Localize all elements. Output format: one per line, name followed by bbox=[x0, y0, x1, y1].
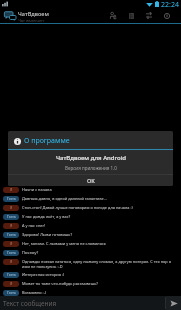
button[interactable]: Я bbox=[0, 238, 181, 247]
button[interactable]: Гость bbox=[0, 229, 181, 238]
staticText: Я bbox=[10, 260, 13, 264]
staticText: OK bbox=[87, 177, 95, 184]
button[interactable]: Я bbox=[0, 220, 181, 229]
staticText: Стоп-стоп! Давай лучше поговорим о погод… bbox=[22, 205, 133, 210]
button[interactable]: Гость bbox=[0, 287, 181, 296]
staticText: Возможно :-) bbox=[22, 290, 47, 295]
staticText: Чат включен bbox=[18, 18, 44, 24]
button[interactable]: Send bbox=[166, 296, 181, 310]
staticText: А у нас снег! bbox=[22, 223, 46, 228]
staticText: Нет, коньки. С лыжами у меня не сложилос… bbox=[22, 241, 106, 246]
button[interactable]: OK bbox=[8, 175, 173, 186]
staticText: Я bbox=[10, 206, 13, 210]
staticText: Я bbox=[10, 282, 13, 286]
staticText: ЧатВдвоем bbox=[18, 10, 49, 18]
button[interactable]: App bbox=[4, 10, 16, 21]
button[interactable]: Switch bbox=[140, 8, 158, 23]
staticText: Гость bbox=[7, 273, 16, 277]
staticText: Гость bbox=[7, 291, 16, 295]
staticText: Может ты тоже что-нибудь расскажешь? bbox=[22, 281, 98, 286]
button[interactable]: Я bbox=[0, 184, 181, 193]
staticText: 22:24 bbox=[161, 0, 179, 8]
staticText: Текст сообщения bbox=[3, 299, 57, 308]
button[interactable]: Я bbox=[0, 256, 181, 269]
button[interactable]: Я bbox=[0, 278, 181, 287]
staticText: Я bbox=[10, 188, 13, 192]
staticText: Версия приложения 1.0 bbox=[65, 165, 117, 171]
staticText: Интересная история :) bbox=[22, 272, 65, 277]
button[interactable]: Я bbox=[0, 202, 181, 211]
button[interactable]: Contacts bbox=[104, 8, 122, 23]
button[interactable]: About bbox=[158, 8, 176, 23]
staticText: Я bbox=[10, 224, 13, 228]
staticText: Гость bbox=[7, 215, 16, 219]
staticText: ЧатВдвоем для Android bbox=[56, 154, 126, 162]
button[interactable]: History bbox=[122, 8, 140, 23]
staticText: Гость bbox=[7, 251, 16, 255]
staticText: Давным-давно, в одной далекой галактике.… bbox=[22, 196, 107, 201]
staticText: У нас дождь льёт, а у вас? bbox=[22, 214, 71, 219]
staticText: Начни с начала bbox=[22, 187, 52, 192]
button[interactable]: Гость bbox=[0, 193, 181, 202]
button[interactable]: Гость bbox=[0, 269, 181, 278]
staticText: Однажды поехал кататься, одну лыжину сло… bbox=[22, 259, 179, 269]
staticText: Гость bbox=[7, 197, 16, 201]
staticText: Почему? bbox=[22, 250, 39, 255]
button[interactable]: Гость bbox=[0, 247, 181, 256]
staticText: Я bbox=[10, 242, 13, 246]
staticText: Гость bbox=[7, 233, 16, 237]
button[interactable]: Гость bbox=[0, 211, 181, 220]
staticText: О программе bbox=[24, 136, 70, 146]
staticText: Здорово! Лыжи готовишь? bbox=[22, 232, 73, 237]
